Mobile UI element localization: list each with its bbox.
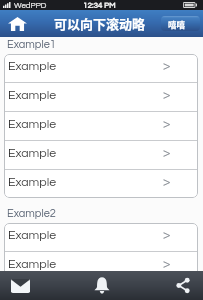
staticText: >: [163, 257, 171, 270]
staticText: 嘻嘻: [168, 18, 186, 30]
staticText: Example2: [7, 208, 56, 219]
staticText: Example: [8, 60, 57, 73]
button[interactable]: Example: [4, 281, 198, 300]
staticText: 可以向下滚动略: [54, 14, 146, 33]
staticText: >: [163, 146, 171, 159]
button[interactable]: 嘻嘻: [161, 16, 200, 31]
staticText: Example: [8, 176, 57, 189]
staticText: 12:34 PM: [83, 1, 116, 9]
staticText: Example: [8, 229, 57, 242]
staticText: >: [163, 59, 171, 72]
button[interactable]: Example: [4, 83, 198, 111]
button[interactable]: Example: [4, 141, 198, 169]
staticText: Example: [8, 89, 57, 102]
staticText: >: [163, 228, 171, 241]
staticText: >: [163, 281, 171, 294]
staticText: >: [163, 117, 171, 130]
staticText: Example: [8, 258, 57, 271]
staticText: >: [163, 175, 171, 188]
staticText: WedPPD: [14, 1, 47, 9]
staticText: Example: [8, 282, 57, 295]
button[interactable]: Example: [4, 223, 198, 251]
button[interactable]: Example: [4, 252, 198, 280]
staticText: >: [163, 88, 171, 101]
staticText: Example: [8, 118, 57, 131]
button[interactable]: Example: [4, 112, 198, 140]
button[interactable]: Example: [4, 54, 198, 82]
staticText: Example1: [7, 39, 56, 50]
staticText: Example: [8, 147, 57, 160]
button[interactable]: Example: [4, 170, 198, 198]
button[interactable]: Home: [7, 16, 27, 32]
button[interactable]: Share: [172, 271, 194, 300]
button[interactable]: Notifications: [91, 271, 113, 300]
button[interactable]: Mail: [9, 271, 31, 300]
